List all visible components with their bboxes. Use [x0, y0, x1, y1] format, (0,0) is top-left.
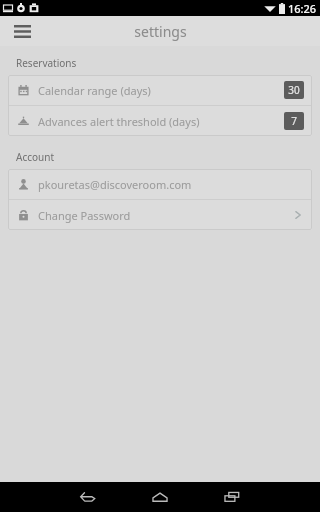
button[interactable]: Recent apps — [196, 482, 268, 512]
button[interactable]: pkouretas@discoveroom.com — [8, 169, 312, 199]
button[interactable]: Back — [52, 482, 124, 512]
staticText: 7 — [291, 114, 297, 128]
button[interactable]: Open navigation menu — [0, 16, 44, 46]
staticText: Reservations — [16, 56, 77, 70]
button[interactable]: Change Password — [8, 200, 312, 230]
staticText: Account — [16, 150, 55, 164]
staticText: settings — [134, 22, 187, 41]
staticText: 16:26 — [288, 1, 317, 16]
staticText: Advances alert threshold (days) — [38, 114, 284, 129]
staticText: 30 — [288, 83, 300, 97]
button[interactable]: Calendar range (days) — [8, 75, 312, 105]
button[interactable]: Home — [124, 482, 196, 512]
staticText: Calendar range (days) — [38, 83, 284, 98]
staticText: Change Password — [38, 208, 292, 223]
staticText: pkouretas@discoveroom.com — [38, 177, 304, 192]
button[interactable]: Advances alert threshold (days) — [8, 106, 312, 136]
